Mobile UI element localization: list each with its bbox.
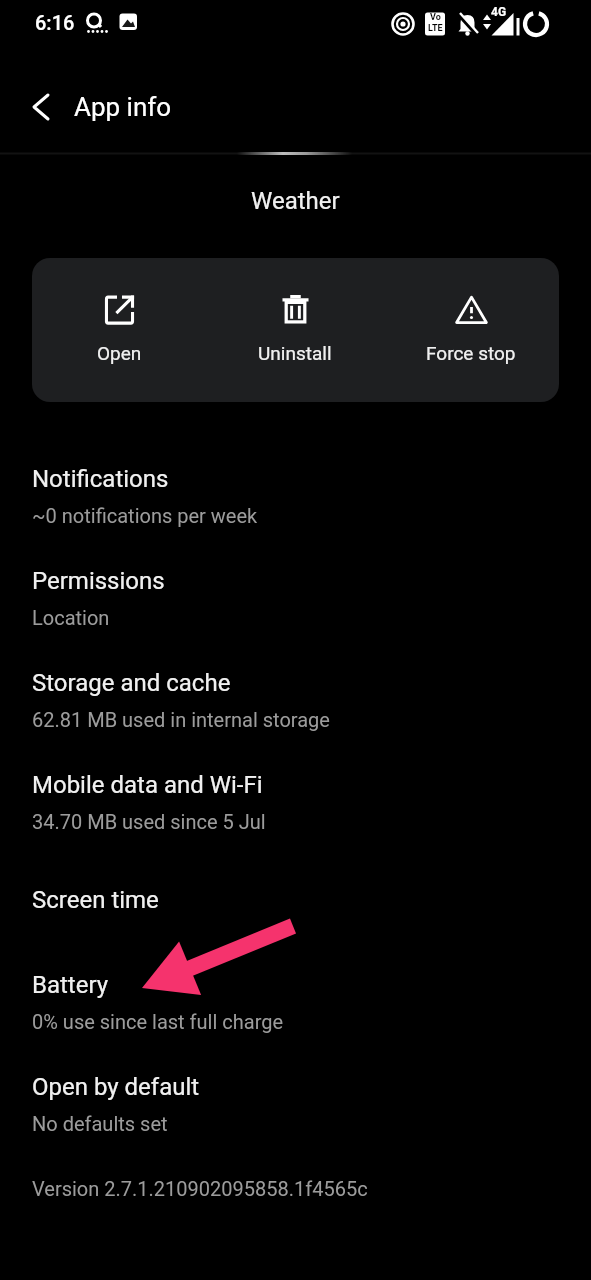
button[interactable]: Open by default	[0, 1056, 591, 1150]
staticText: Storage and cache	[32, 669, 231, 697]
staticText: Open	[97, 342, 142, 364]
button[interactable]: Storage and cache	[0, 652, 591, 746]
staticText: LTE	[428, 23, 443, 34]
staticText: Permissions	[32, 567, 165, 595]
staticText: Mobile data and Wi-Fi	[32, 771, 263, 799]
staticText: 6:16	[35, 11, 75, 34]
staticText: No defaults set	[32, 1112, 168, 1135]
staticText: 62.81 MB used in internal storage	[32, 708, 330, 731]
staticText: 34.70 MB used since 5 Jul	[32, 810, 266, 833]
button[interactable]: Notifications	[0, 448, 591, 542]
button[interactable]: Screen time	[0, 869, 591, 929]
staticText: Force stop	[426, 342, 516, 364]
button[interactable]: Open	[32, 258, 207, 402]
button[interactable]: Force stop	[383, 258, 559, 402]
button[interactable]: Mobile data and Wi-Fi	[0, 754, 591, 848]
staticText: Notifications	[32, 465, 169, 493]
button[interactable]: Permissions	[0, 550, 591, 644]
staticText: 4G	[491, 5, 507, 19]
staticText: App info	[74, 92, 172, 122]
staticText: Location	[32, 606, 110, 629]
staticText: Weather	[251, 187, 340, 215]
button[interactable]: Uninstall	[207, 258, 383, 402]
staticText: Open by default	[32, 1073, 200, 1101]
staticText: ~0 notifications per week	[32, 504, 258, 527]
staticText: Uninstall	[258, 342, 332, 364]
button[interactable]: Battery	[0, 954, 591, 1048]
staticText: Vo	[430, 12, 441, 23]
staticText: Battery	[32, 971, 109, 999]
button[interactable]	[17, 83, 65, 131]
staticText: Version 2.7.1.210902095858.1f4565c	[32, 1177, 368, 1200]
staticText: Screen time	[32, 886, 159, 914]
staticText: 0% use since last full charge	[32, 1010, 284, 1033]
